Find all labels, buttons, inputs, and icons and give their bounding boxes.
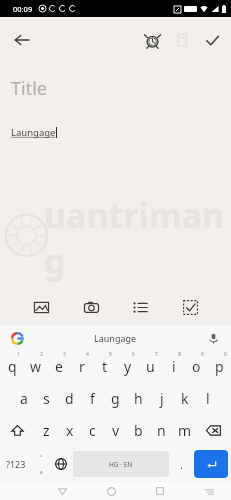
button[interactable]: Laungage [94, 332, 137, 344]
staticText: y [124, 357, 132, 376]
button[interactable]: a [12, 382, 35, 414]
staticText: 2 [40, 351, 43, 358]
staticText: ?123 [6, 458, 26, 470]
staticText: o [192, 357, 201, 376]
staticText: z [43, 421, 50, 440]
button[interactable]: Archive [167, 25, 197, 55]
staticText: t [102, 357, 108, 376]
staticText: b [134, 421, 143, 440]
button[interactable]: m [173, 414, 196, 446]
button[interactable]: g [104, 382, 127, 414]
button[interactable]: s [35, 382, 58, 414]
staticText: e [55, 357, 63, 376]
staticText: c [89, 421, 96, 440]
button[interactable]: Back [6, 24, 38, 56]
button[interactable]: 4 [70, 350, 93, 382]
button[interactable]: h [127, 382, 150, 414]
button[interactable]: d [58, 382, 81, 414]
staticText: 3 [63, 351, 66, 358]
staticText: v [112, 421, 120, 440]
staticText: Laungage [11, 126, 56, 139]
staticText: 9 [201, 351, 204, 358]
staticText: d [65, 389, 74, 408]
button[interactable]: 7 [139, 350, 162, 382]
button[interactable]: Scan [175, 292, 205, 322]
button[interactable]: ?123 [0, 446, 31, 482]
button[interactable]: z [35, 414, 58, 446]
button[interactable]: Done [197, 25, 227, 55]
button[interactable]: Google [6, 327, 28, 349]
button[interactable]: Reminder [137, 25, 167, 55]
staticText: ° [40, 453, 43, 461]
staticText: . [180, 457, 183, 472]
button[interactable]: n [150, 414, 173, 446]
button[interactable]: Add image [26, 292, 56, 322]
staticText: 4 [86, 351, 89, 358]
staticText: a [20, 389, 28, 408]
staticText: u [146, 357, 155, 376]
button[interactable]: b [127, 414, 150, 446]
button[interactable]: Change language [51, 446, 71, 482]
staticText: 8 [178, 351, 181, 358]
staticText: 7 [155, 351, 158, 358]
button[interactable]: 9 [185, 350, 208, 382]
staticText: i [172, 357, 176, 376]
button[interactable]: Enter [194, 450, 228, 478]
staticText: 0 [224, 351, 227, 358]
button[interactable]: Voice input [202, 327, 224, 349]
button[interactable]: f [81, 382, 104, 414]
button[interactable]: 5 [93, 350, 116, 382]
staticText: 6 [132, 351, 135, 358]
staticText: j [160, 389, 164, 408]
staticText: f [90, 389, 95, 408]
button[interactable]: 1 [0, 350, 24, 382]
button[interactable]: Laungage [11, 126, 57, 139]
staticText: p [215, 357, 224, 376]
staticText: w [30, 357, 42, 376]
button[interactable]: Space [73, 451, 169, 477]
button[interactable]: Home [99, 482, 123, 500]
staticText: uantrimang [44, 192, 225, 284]
staticText: n [157, 421, 166, 440]
staticText: m [178, 421, 192, 440]
button[interactable]: Checklist [125, 292, 155, 322]
button[interactable]: c [81, 414, 104, 446]
button[interactable]: 2 [24, 350, 47, 382]
button[interactable]: 6 [116, 350, 139, 382]
button[interactable]: l [196, 382, 219, 414]
staticText: 00:09 [13, 4, 33, 14]
staticText: k [181, 389, 189, 408]
staticText: 5 [109, 351, 112, 358]
button[interactable]: Take photo [76, 292, 106, 322]
staticText: q [8, 357, 17, 376]
button[interactable]: Backspace [196, 414, 231, 446]
staticText: s [43, 389, 50, 408]
button[interactable]: Hide keyboard [197, 482, 221, 500]
button[interactable]: v [104, 414, 127, 446]
button[interactable]: j [150, 382, 173, 414]
button[interactable]: 0 [208, 350, 231, 382]
staticText: h [134, 389, 143, 408]
button[interactable]: Comma [31, 446, 51, 482]
staticText: r [79, 357, 85, 376]
button[interactable]: Shift [0, 414, 35, 446]
button[interactable]: k [173, 382, 196, 414]
button[interactable]: Back [50, 482, 74, 500]
button[interactable]: 8 [162, 350, 185, 382]
button[interactable]: Recents [148, 482, 172, 500]
staticText: HG · EN [109, 460, 133, 469]
staticText: , [40, 461, 43, 476]
staticText: x [66, 421, 74, 440]
staticText: g [111, 389, 120, 408]
button[interactable]: x [58, 414, 81, 446]
staticText: l [206, 389, 210, 408]
button[interactable]: 3 [47, 350, 70, 382]
staticText: 1 [17, 351, 20, 358]
button[interactable]: Title [11, 76, 47, 101]
button[interactable]: Period [171, 446, 191, 482]
